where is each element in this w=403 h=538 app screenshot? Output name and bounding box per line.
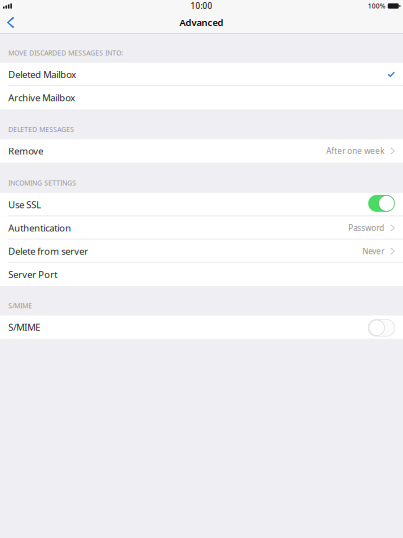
staticText: Deleted Mailbox <box>8 68 76 81</box>
button[interactable]: Server Port <box>0 263 403 286</box>
staticText: Advanced <box>179 16 223 29</box>
staticText: 100% <box>368 2 386 10</box>
staticText: INCOMING SETTINGS <box>8 179 76 187</box>
staticText: Never <box>362 246 384 256</box>
button[interactable]: S/MIME <box>368 319 395 336</box>
button[interactable]: Use SSL <box>368 195 395 212</box>
staticText: Delete from server <box>8 245 88 257</box>
button[interactable]: Use SSL <box>0 193 403 216</box>
button[interactable]: Archive Mailbox <box>0 86 403 109</box>
button[interactable]: S/MIME <box>0 316 403 339</box>
staticText: After one week <box>326 146 384 156</box>
staticText: Use SSL <box>8 198 41 211</box>
button[interactable]: Remove <box>0 139 403 162</box>
staticText: DELETED MESSAGES <box>8 125 74 134</box>
staticText: MOVE DISCARDED MESSAGES INTO: <box>8 48 123 57</box>
staticText: Server Port <box>8 268 57 280</box>
staticText: S/MIME <box>8 301 32 310</box>
staticText: Authentication <box>8 222 71 234</box>
button[interactable]: Delete from server <box>0 239 403 263</box>
button[interactable]: Deleted Mailbox <box>0 63 403 86</box>
button[interactable]: Back <box>0 12 27 33</box>
staticText: 10:00 <box>190 1 212 11</box>
staticText: S/MIME <box>8 321 40 333</box>
staticText: Archive Mailbox <box>8 91 75 104</box>
staticText: Password <box>348 222 384 233</box>
staticText: Remove <box>8 145 43 157</box>
button[interactable]: Authentication <box>0 216 403 239</box>
